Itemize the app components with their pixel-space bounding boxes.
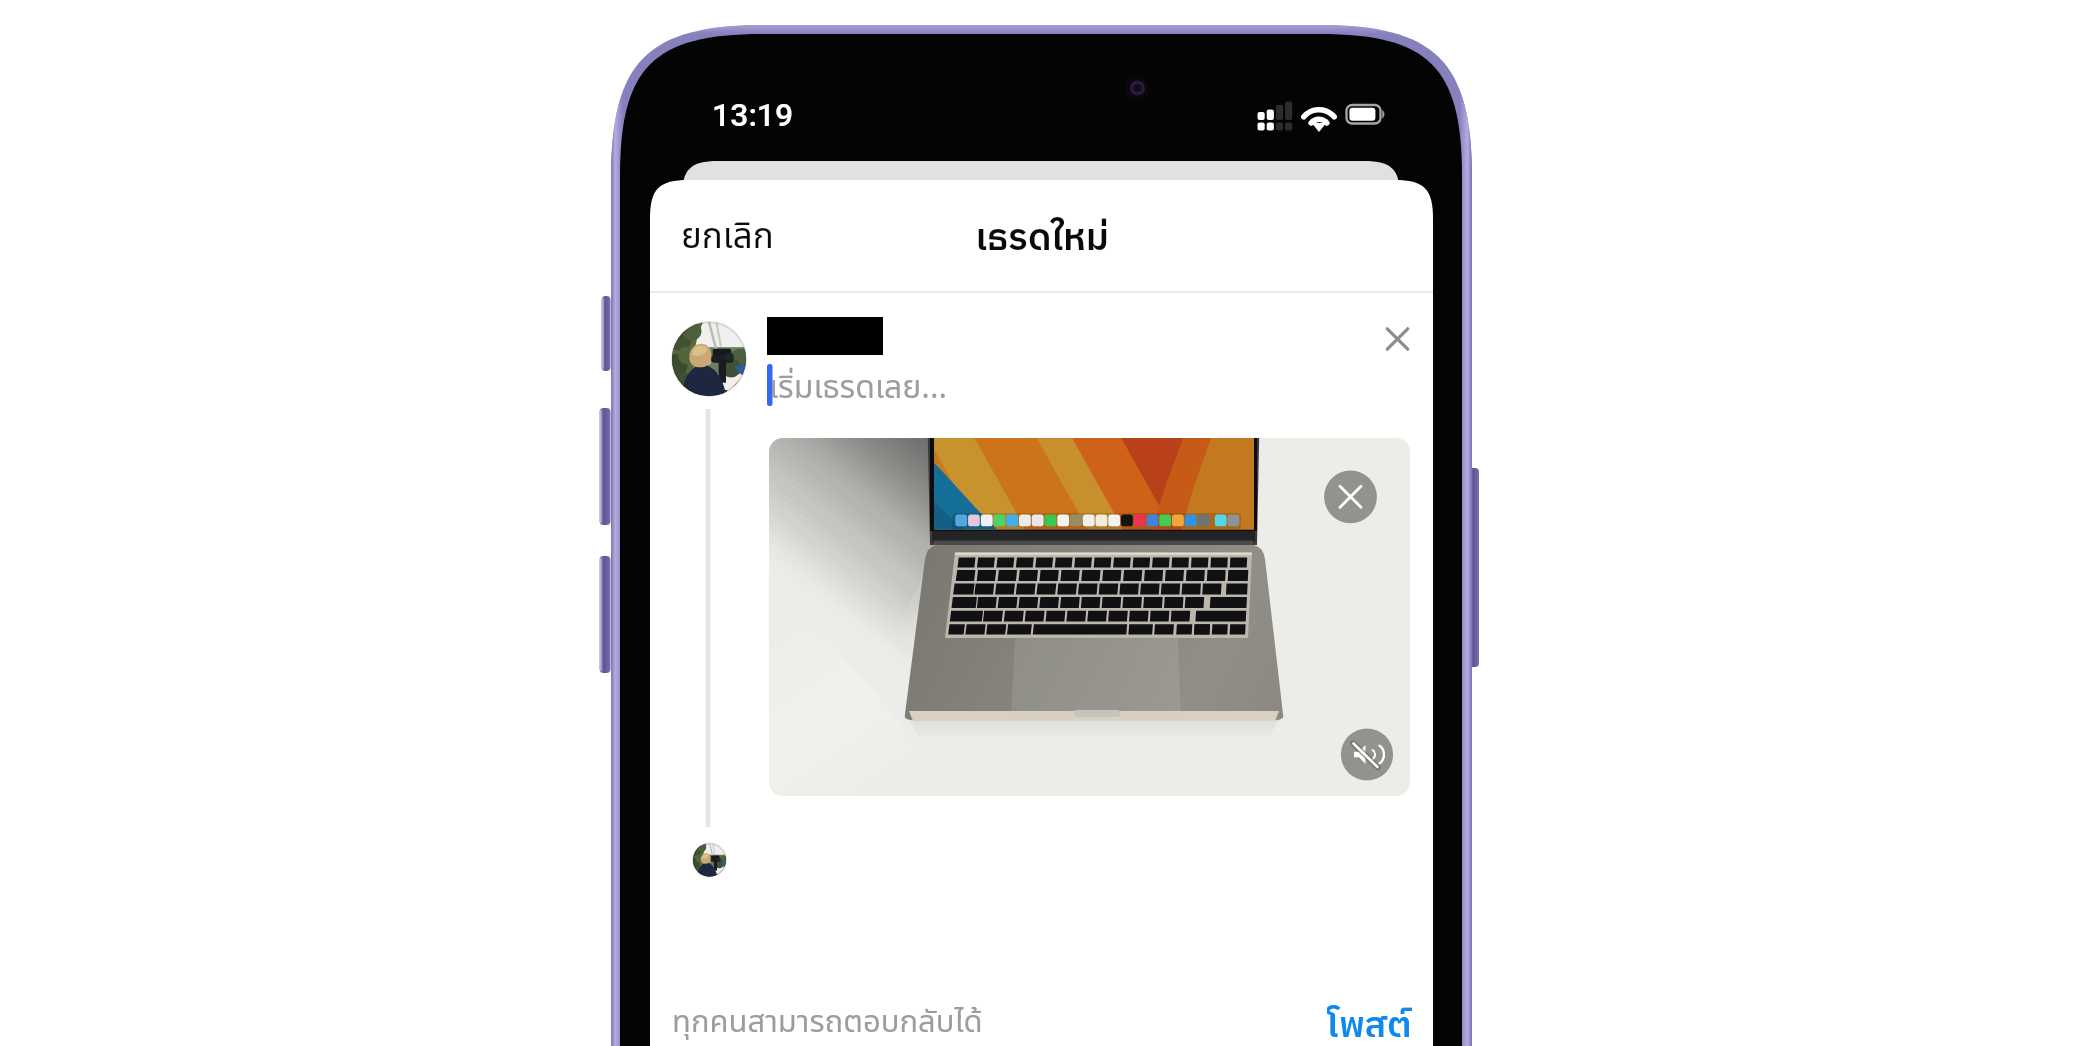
button[interactable]: ทุกคนสามารถตอบกลับได้ [660,992,990,1046]
staticText: ยกเลิก [681,211,774,264]
staticText: 13:19 [712,96,794,134]
staticText: เริ่มเธรดเลย... [769,364,948,412]
button[interactable]: โพสต์ [1312,988,1424,1046]
button[interactable]: Unmute video [1340,728,1392,780]
staticText: ทุกคนสามารถตอบกลับได้ [672,999,983,1046]
button[interactable]: ยกเลิก [664,202,790,278]
staticText: โพสต์ [1327,997,1412,1046]
staticText: เธรดใหม่ [942,209,1142,270]
button[interactable]: Remove post [1374,316,1421,363]
button[interactable]: Remove attachment [1321,467,1381,527]
